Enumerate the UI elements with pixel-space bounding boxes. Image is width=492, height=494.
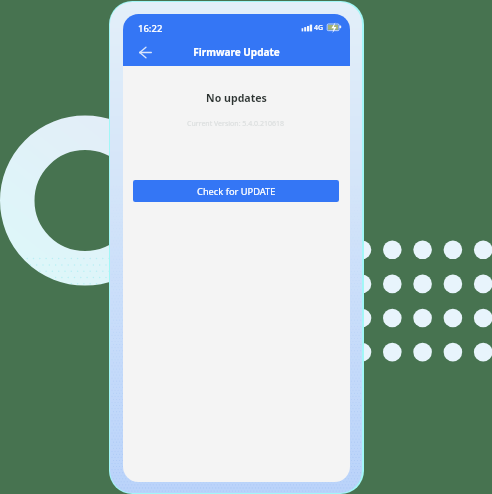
staticText: No updates bbox=[123, 91, 350, 105]
button[interactable]: Check for UPDATE bbox=[133, 180, 339, 202]
staticText: Current Version: 5.4.0.210618 bbox=[123, 119, 349, 129]
button[interactable]: Back bbox=[130, 38, 160, 66]
staticText: Check for UPDATE bbox=[197, 185, 276, 198]
staticText: Firmware Update bbox=[123, 45, 350, 59]
staticText: 4G bbox=[314, 23, 324, 33]
staticText: 16:22 bbox=[138, 22, 163, 35]
